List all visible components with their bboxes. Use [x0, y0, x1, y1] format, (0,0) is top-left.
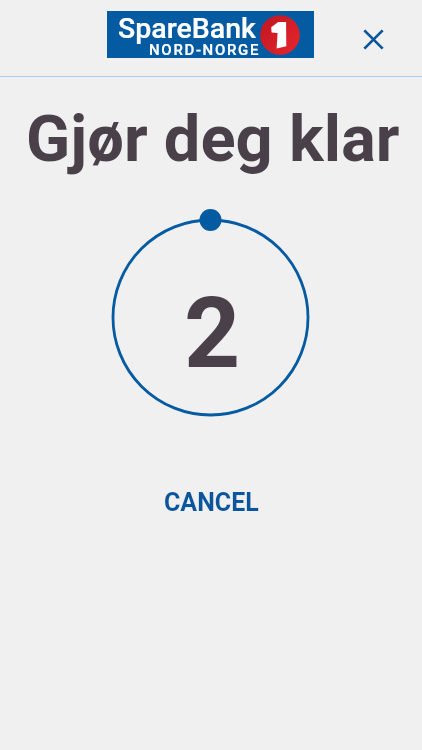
- button[interactable]: CANCEL: [144, 478, 279, 527]
- staticText: 2: [184, 276, 241, 391]
- button[interactable]: SpareBank 1 Nord-Norge: [107, 11, 314, 58]
- staticText: NORD-NORGE: [149, 41, 261, 59]
- staticText: CANCEL: [164, 488, 259, 517]
- staticText: Gjør deg klar: [26, 101, 400, 177]
- button[interactable]: Close: [349, 15, 397, 63]
- staticText: SpareBank: [118, 12, 256, 45]
